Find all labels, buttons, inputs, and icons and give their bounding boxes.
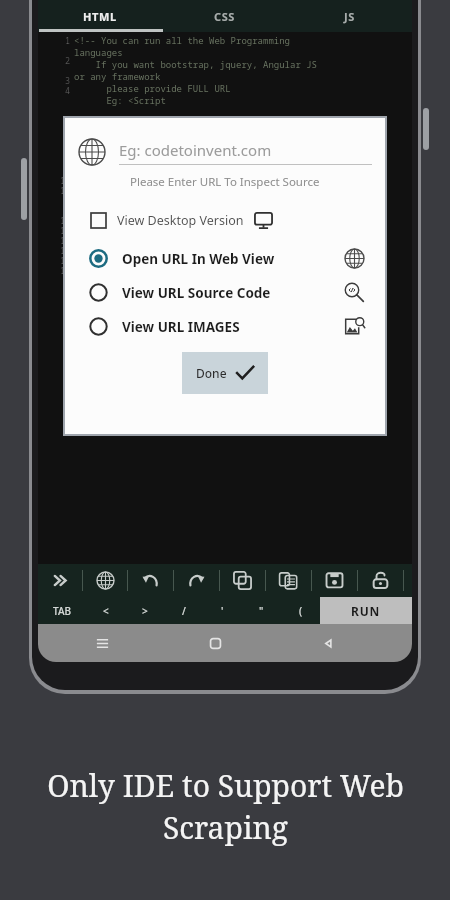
button[interactable]: Web (83, 564, 127, 597)
staticText: CSS (214, 9, 235, 24)
button[interactable]: > (125, 597, 164, 624)
staticText: 1 (65, 35, 71, 47)
staticText: ' (221, 604, 224, 618)
staticText: TAB (53, 604, 72, 618)
button[interactable]: HTML (38, 0, 162, 32)
staticText: 3 (65, 75, 71, 87)
button[interactable]: View Desktop Version (78, 211, 372, 230)
staticText: 13 (60, 225, 71, 237)
staticText: 12 (60, 215, 71, 227)
button[interactable]: ( (281, 597, 320, 624)
button[interactable]: Redo (174, 564, 219, 597)
staticText: Please Enter URL To Inspect Source (130, 174, 320, 190)
staticText: please provide FULL URL (74, 82, 231, 94)
staticText: Only IDE to Support Web Scraping (47, 765, 404, 848)
button[interactable]: Paste (266, 564, 311, 597)
staticText: View Desktop Version (117, 212, 244, 229)
button[interactable]: View URL IMAGES (78, 316, 372, 337)
staticText: / (182, 604, 186, 618)
button[interactable]: Lock (358, 564, 403, 597)
staticText: View URL Source Code (122, 284, 271, 302)
staticText: " (259, 604, 264, 618)
button[interactable]: / (164, 597, 203, 624)
staticText: 17 (60, 265, 71, 277)
button[interactable]: Expand (38, 564, 82, 597)
staticText: languages (74, 46, 123, 58)
staticText: 10 (60, 175, 71, 187)
staticText: Open URL In Web View (122, 250, 275, 268)
button[interactable]: Menu (85, 626, 119, 660)
staticText: Eg: <Script (74, 94, 166, 106)
staticText: or any framework (74, 70, 161, 82)
staticText: 11 (60, 185, 71, 197)
staticText: ( (299, 604, 303, 618)
staticText: 15 (60, 245, 71, 257)
button[interactable]: Save (312, 564, 357, 597)
staticText: 2 (65, 55, 71, 67)
button[interactable]: Undo (128, 564, 173, 597)
staticText: < (103, 604, 109, 618)
button[interactable]: ' (203, 597, 242, 624)
button[interactable]: JS (287, 0, 412, 32)
button[interactable]: Home (198, 626, 232, 660)
staticText: 14 (60, 235, 71, 247)
staticText: If you want bootstrap, jquery, Angular J… (74, 58, 318, 70)
button[interactable]: View URL Source Code (78, 282, 372, 303)
staticText: Eg: codetoinvent.com (119, 140, 272, 160)
button[interactable]: " (242, 597, 281, 624)
staticText: RUN (351, 603, 381, 619)
button[interactable]: Back (311, 626, 345, 660)
button[interactable]: RUN (320, 597, 412, 624)
button[interactable]: Open URL In Web View (78, 248, 372, 269)
staticText: View URL IMAGES (122, 318, 240, 336)
button[interactable]: Done (182, 352, 268, 394)
staticText: JS (344, 9, 355, 24)
staticText: 16 (60, 255, 71, 267)
staticText: > (142, 604, 148, 618)
staticText: Done (196, 365, 227, 381)
button[interactable]: < (86, 597, 125, 624)
staticText: HTML (83, 9, 117, 24)
staticText: <!-- You can run all the Web Programming (74, 34, 291, 46)
button[interactable]: Copy (220, 564, 265, 597)
staticText: 4 (65, 85, 71, 97)
button[interactable]: TAB (38, 597, 86, 624)
button[interactable]: CSS (162, 0, 287, 32)
